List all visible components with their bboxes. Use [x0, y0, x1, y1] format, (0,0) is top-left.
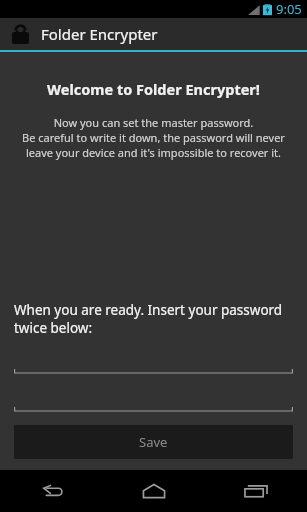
- staticText: Welcome to Folder Encrypter!: [0, 79, 307, 99]
- staticText: Now you can set the master password.: [0, 115, 307, 130]
- button[interactable]: Password input: [14, 360, 293, 374]
- staticText: Save: [139, 433, 168, 451]
- button[interactable]: Back: [0, 470, 103, 512]
- button[interactable]: Save: [14, 425, 293, 459]
- staticText: When you are ready. Insert your password…: [14, 301, 293, 337]
- button[interactable]: Folder Encrypter: [0, 18, 307, 50]
- button[interactable]: Password input: [14, 398, 293, 412]
- staticText: Be careful to write it down, the passwor…: [0, 130, 307, 145]
- staticText: Folder Encrypter: [41, 24, 158, 44]
- staticText: leave your device and it's impossible to…: [0, 145, 307, 160]
- button[interactable]: Home: [103, 470, 205, 512]
- button[interactable]: Recent apps: [205, 470, 307, 512]
- staticText: 9:05: [276, 0, 302, 18]
